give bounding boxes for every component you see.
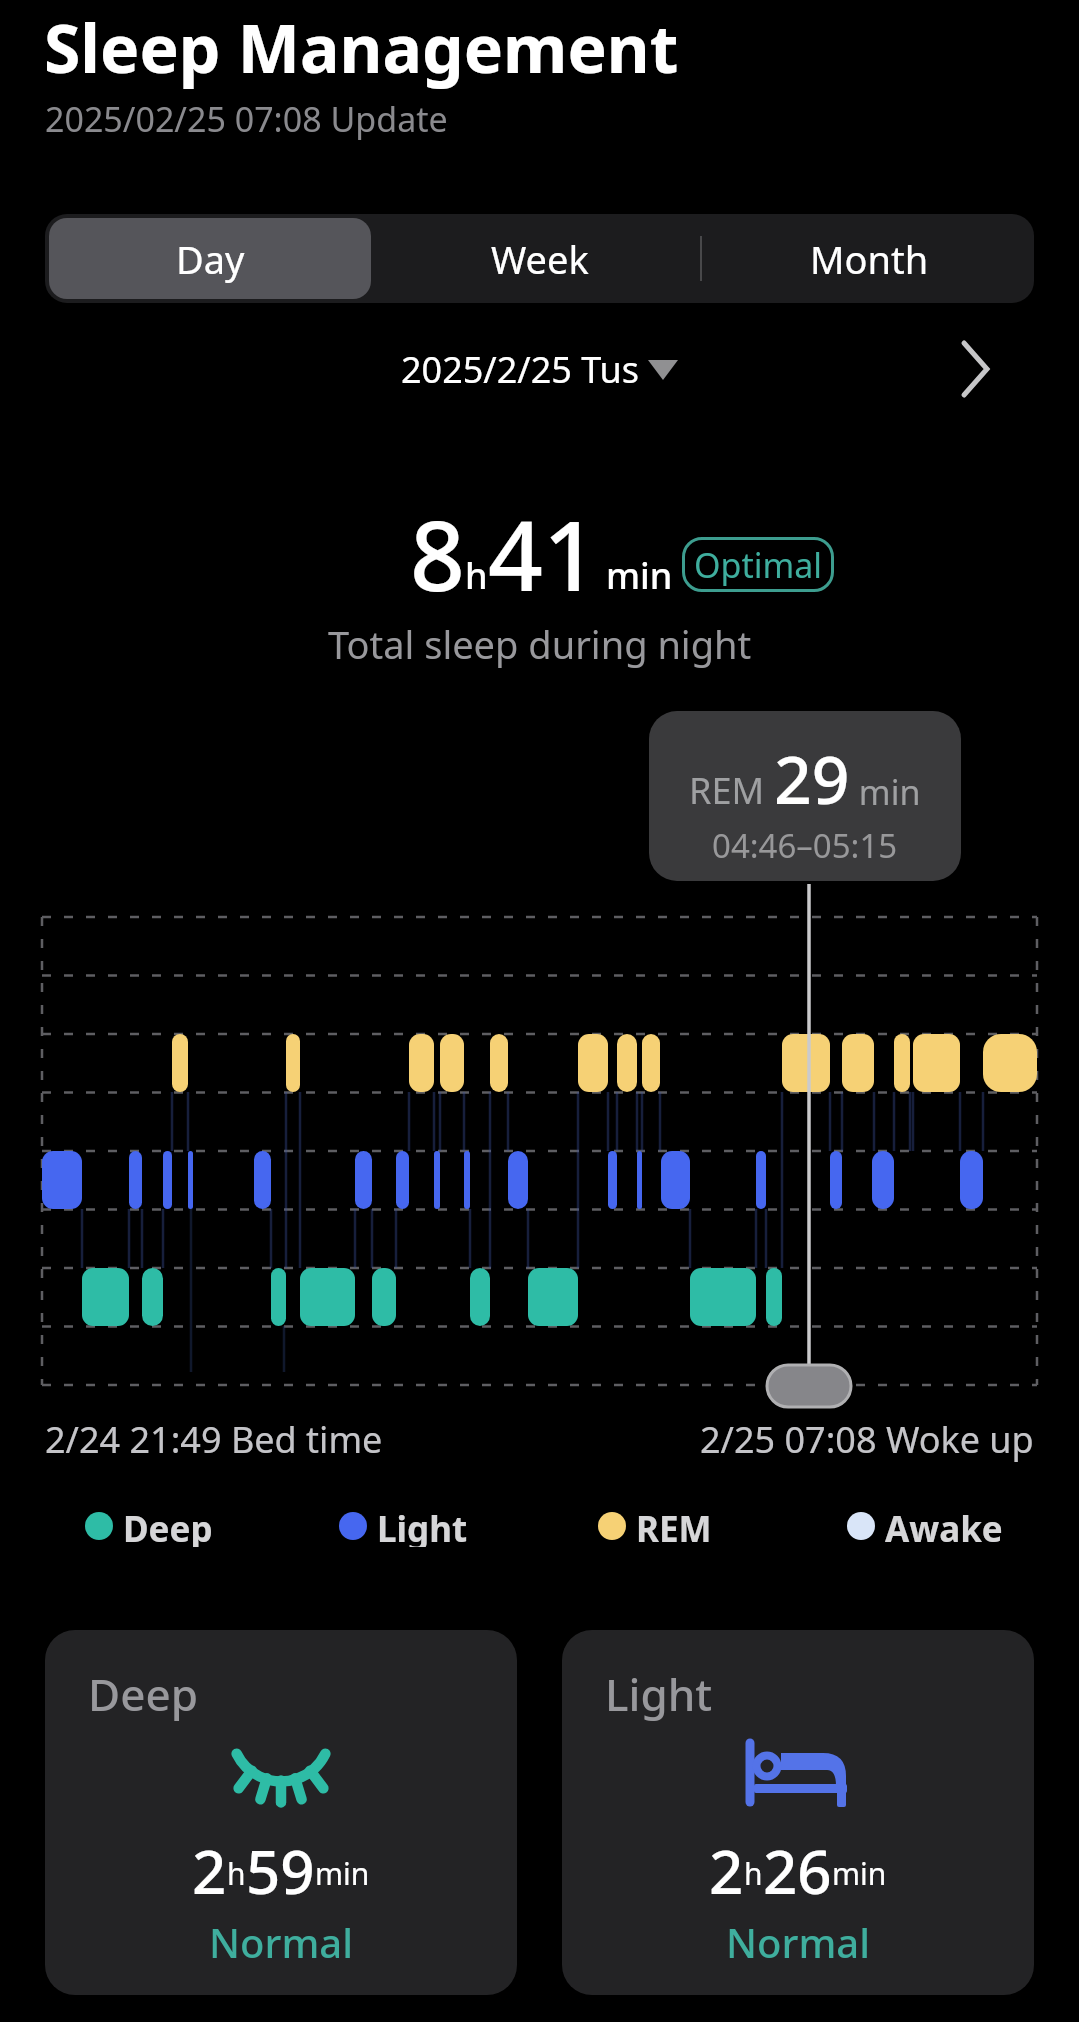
staticText: REM [689, 766, 774, 815]
staticText: Day [176, 233, 245, 285]
staticText: h [744, 1853, 763, 1894]
button[interactable]: Deep [45, 1630, 517, 1995]
staticText: 2 [709, 1830, 744, 1900]
staticText: h [227, 1853, 246, 1894]
staticText: Sleep Management [44, 2, 679, 92]
staticText: Deep [88, 1664, 198, 1724]
staticText: Awake [885, 1505, 1003, 1547]
staticText: Light [605, 1664, 713, 1724]
staticText: 2/24 21:49 Bed time [45, 1415, 383, 1464]
staticText: h [465, 551, 488, 600]
staticText: 29 [774, 733, 850, 823]
staticText: 2025/02/25 07:08 Update [45, 96, 448, 142]
staticText: 41 [488, 488, 598, 610]
staticText: 2 [192, 1830, 227, 1900]
staticText: 04:46–05:15 [712, 823, 898, 868]
staticText: 2025/2/25 Tus [401, 345, 639, 394]
staticText: Normal [209, 1915, 353, 1969]
staticText: 2/25 07:08 Woke up [700, 1415, 1034, 1464]
staticText: min [606, 551, 673, 600]
staticText: min [315, 1853, 370, 1894]
button[interactable]: Week [375, 214, 705, 303]
staticText: REM [636, 1505, 712, 1547]
staticText: Week [491, 233, 589, 285]
staticText: 8 [410, 488, 465, 610]
button[interactable] [962, 341, 990, 397]
button[interactable]: 2025/2/25 Tus [401, 345, 679, 394]
staticText: 26 [763, 1830, 832, 1900]
staticText: min [850, 769, 921, 815]
button[interactable]: Month [704, 214, 1034, 303]
staticText: 59 [246, 1830, 315, 1900]
button[interactable]: Day [49, 218, 371, 299]
staticText: min [832, 1853, 887, 1894]
staticText: Optimal [694, 542, 823, 588]
staticText: Normal [726, 1915, 870, 1969]
staticText: Light [377, 1505, 468, 1547]
button[interactable]: Light [562, 1630, 1034, 1995]
staticText: Deep [123, 1505, 213, 1547]
staticText: Month [810, 233, 929, 285]
staticText: Total sleep during night [328, 618, 752, 670]
